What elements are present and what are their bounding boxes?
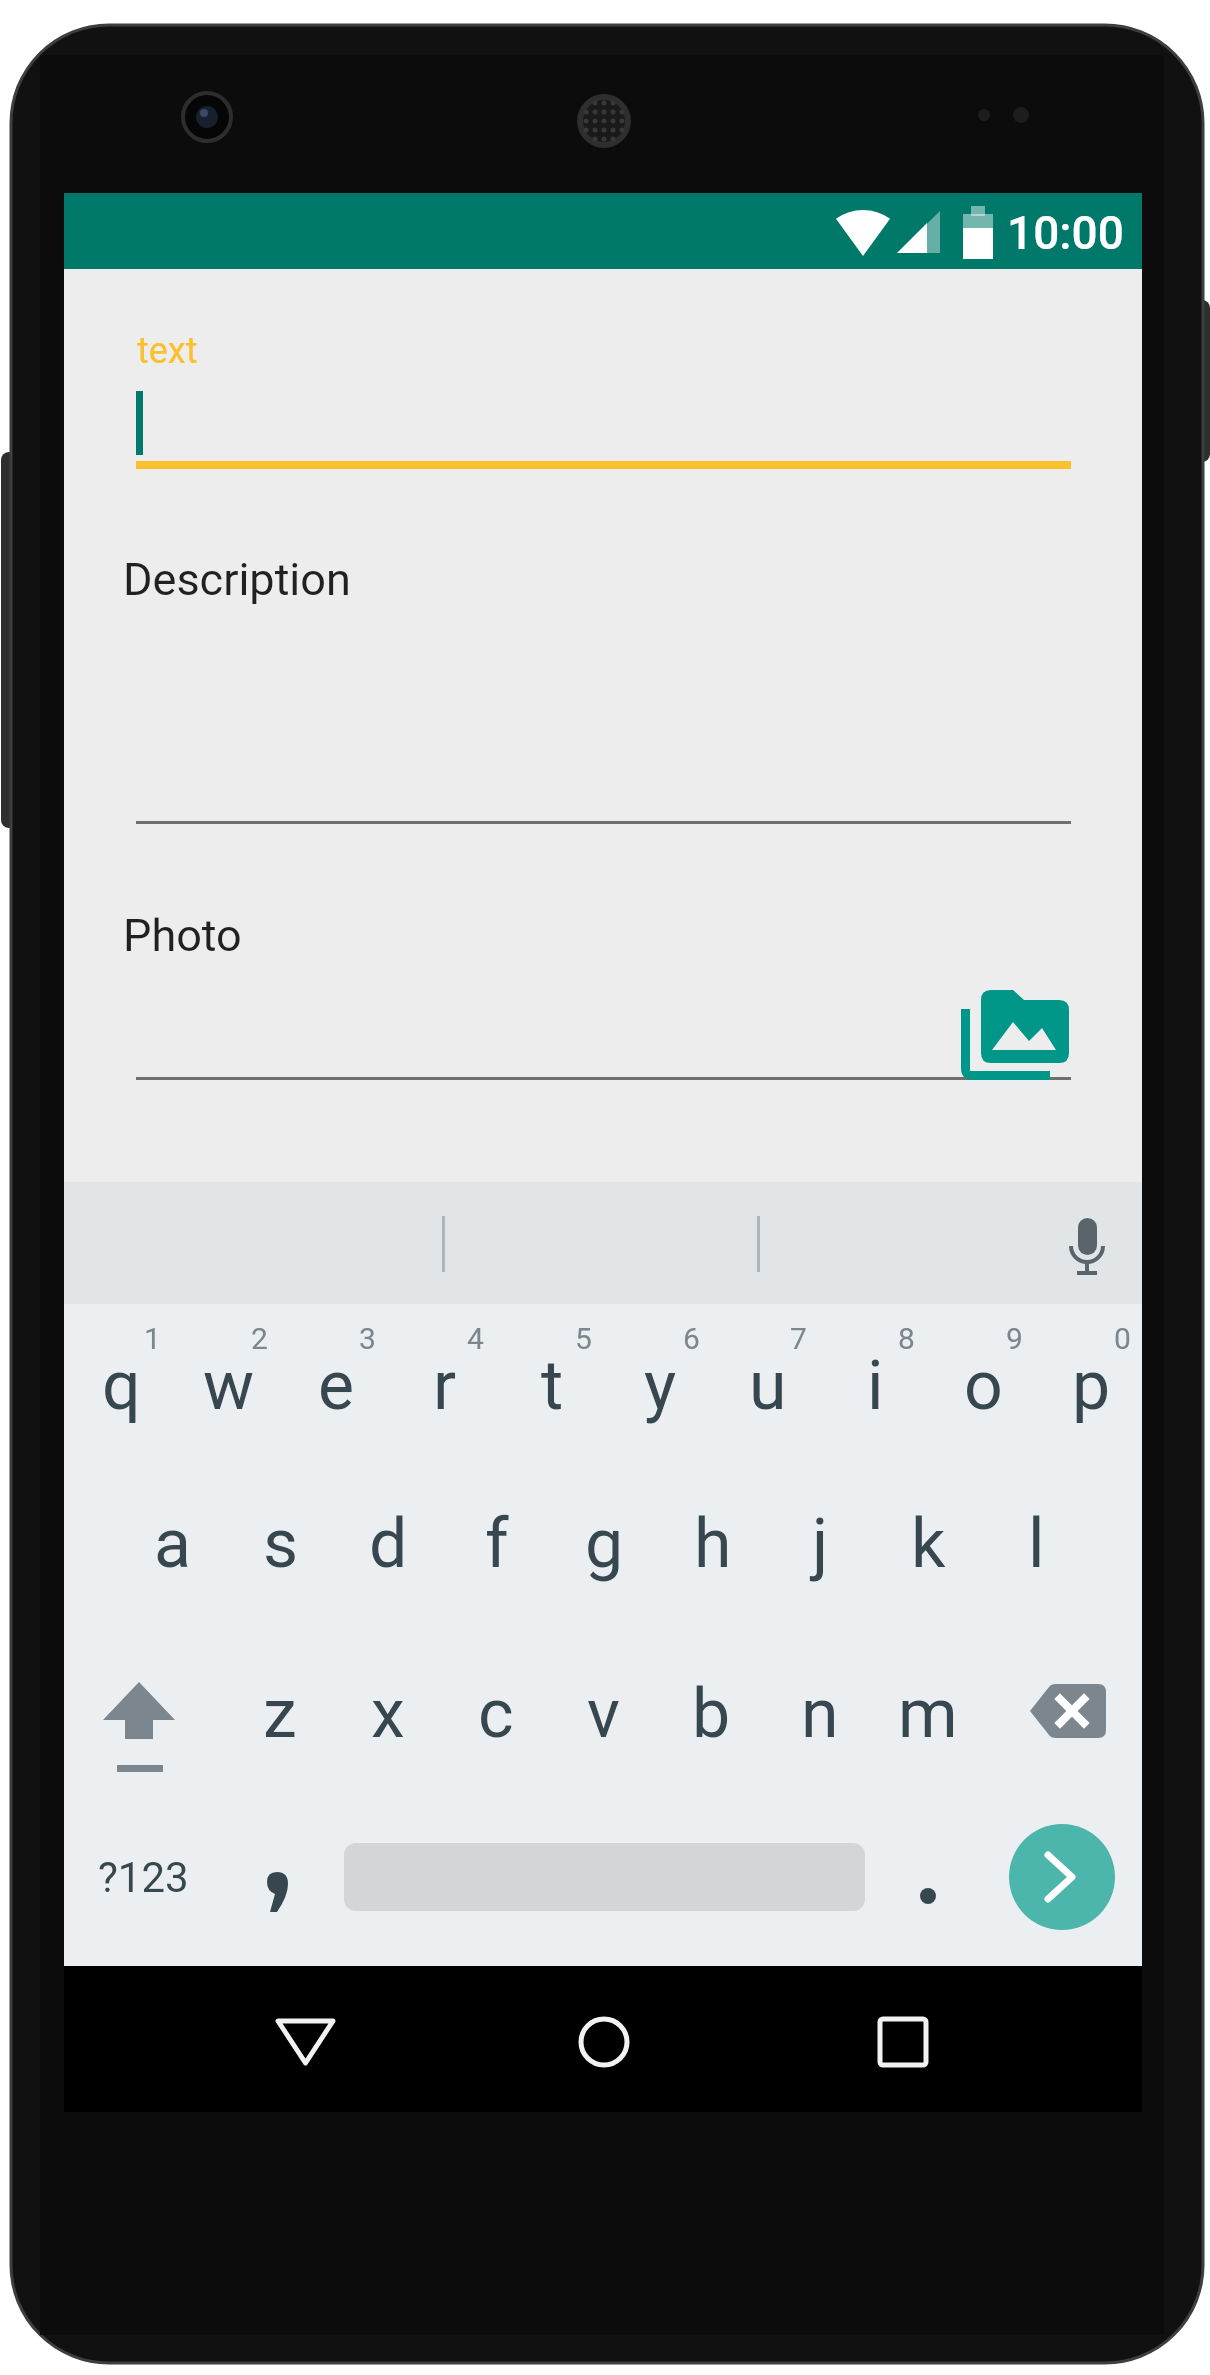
button[interactable]: e (283, 1311, 390, 1461)
button[interactable]: n (766, 1639, 873, 1789)
staticText: 7 (790, 1321, 807, 1356)
staticText: text (137, 330, 198, 372)
staticText: i (867, 1346, 884, 1426)
button[interactable]: f (443, 1469, 550, 1619)
button[interactable]: ?123 (68, 1827, 218, 1927)
button[interactable]: b (658, 1639, 765, 1789)
button[interactable]: q (68, 1311, 175, 1461)
button[interactable]: p (1038, 1311, 1145, 1461)
staticText: f (485, 1504, 509, 1584)
staticText: Photo (123, 909, 242, 962)
staticText: u (749, 1346, 787, 1426)
staticText: o (964, 1346, 1003, 1426)
staticText: 10:00 (1007, 206, 1124, 260)
staticText: 4 (467, 1321, 484, 1356)
staticText: s (263, 1504, 299, 1584)
button[interactable]: w (175, 1311, 282, 1461)
staticText: b (692, 1674, 731, 1754)
staticText: 8 (898, 1321, 915, 1356)
staticText: y (644, 1346, 677, 1426)
button[interactable]: j (767, 1469, 874, 1619)
button[interactable]: t (499, 1311, 606, 1461)
button[interactable]: o (930, 1311, 1037, 1461)
button[interactable] (255, 1992, 355, 2092)
staticText: 3 (359, 1321, 376, 1356)
staticText: h (694, 1504, 732, 1584)
staticText: Description (123, 553, 351, 606)
button[interactable]: y (607, 1311, 714, 1461)
staticText: l (1028, 1504, 1045, 1584)
staticText: d (369, 1504, 408, 1584)
button[interactable]: a (119, 1469, 226, 1619)
button[interactable] (853, 1992, 953, 2092)
button[interactable]: c (442, 1639, 549, 1789)
staticText: t (541, 1346, 564, 1426)
staticText: z (263, 1674, 297, 1754)
button[interactable]: u (714, 1311, 821, 1461)
button[interactable]: r (391, 1311, 498, 1461)
button[interactable] (957, 988, 1071, 1088)
button[interactable]: l (983, 1469, 1090, 1619)
staticText: v (587, 1674, 620, 1754)
button[interactable] (1009, 1824, 1115, 1930)
staticText: k (911, 1504, 946, 1584)
staticText: 1 (144, 1321, 161, 1356)
staticText: ?123 (98, 1853, 189, 1902)
staticText: j (812, 1504, 829, 1584)
staticText: r (433, 1346, 457, 1426)
button[interactable]: g (551, 1469, 658, 1619)
button[interactable]: m (874, 1639, 981, 1789)
staticText: 5 (575, 1321, 592, 1356)
button[interactable]: x (334, 1639, 441, 1789)
staticText: e (318, 1346, 355, 1426)
button[interactable]: s (227, 1469, 334, 1619)
button[interactable]: z (226, 1639, 333, 1789)
button[interactable]: h (659, 1469, 766, 1619)
staticText: n (801, 1674, 839, 1754)
staticText: a (154, 1504, 191, 1584)
button[interactable]: i (822, 1311, 929, 1461)
staticText: p (1072, 1346, 1111, 1426)
button[interactable]: v (550, 1639, 657, 1789)
staticText: m (898, 1674, 958, 1754)
staticText: 2 (251, 1321, 268, 1356)
staticText: w (203, 1346, 255, 1426)
staticText: c (478, 1674, 514, 1754)
button[interactable]: k (875, 1469, 982, 1619)
staticText: q (102, 1346, 141, 1426)
button[interactable]: d (335, 1469, 442, 1619)
staticText: x (371, 1674, 405, 1754)
button[interactable] (554, 1992, 654, 2092)
staticText: 0 (1114, 1321, 1131, 1356)
staticText: g (585, 1504, 624, 1584)
staticText: 9 (1006, 1321, 1023, 1356)
staticText: 6 (683, 1321, 700, 1356)
